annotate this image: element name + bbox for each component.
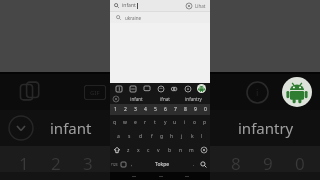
button[interactable]: ukraine <box>110 12 210 23</box>
button[interactable]: 3 <box>130 104 140 115</box>
staticText: Tokpe <box>155 161 170 168</box>
button[interactable]: v <box>153 143 164 157</box>
button[interactable]: , <box>128 157 135 172</box>
button[interactable]: u <box>170 115 180 129</box>
button[interactable]: Shift <box>110 143 123 157</box>
staticText: 9 <box>263 152 273 172</box>
button[interactable]: Stickers <box>114 84 124 94</box>
button[interactable]: m <box>186 143 197 157</box>
staticText: 1 <box>19 152 29 172</box>
staticText: infant <box>130 96 143 102</box>
button[interactable]: c <box>143 143 153 157</box>
button[interactable]: x <box>133 143 143 157</box>
staticText: d <box>139 133 143 140</box>
button[interactable]: l <box>197 129 207 143</box>
staticText: i <box>184 119 186 126</box>
button[interactable]: 6 <box>160 104 170 115</box>
button[interactable]: Lihat <box>195 3 206 9</box>
button[interactable]: b <box>164 143 175 157</box>
button[interactable]: t <box>150 115 160 129</box>
button[interactable]: h <box>167 129 177 143</box>
button[interactable]: infant <box>110 0 210 11</box>
staticText: 3 <box>83 152 93 172</box>
button[interactable]: p <box>200 115 210 129</box>
button[interactable]: GIF <box>78 75 112 109</box>
button[interactable]: k <box>187 129 197 143</box>
staticText: infantry <box>185 96 202 102</box>
button[interactable]: j <box>177 129 187 143</box>
button[interactable]: . <box>190 157 197 172</box>
button[interactable]: Expand suggestions <box>6 113 36 143</box>
button[interactable]: 7 <box>170 104 180 115</box>
staticText: ukraine <box>125 15 141 21</box>
staticText: n <box>179 147 183 154</box>
button[interactable]: 9 <box>252 152 284 172</box>
button[interactable]: g <box>157 129 167 143</box>
button[interactable]: q <box>110 115 120 129</box>
button[interactable]: 1 <box>110 104 120 115</box>
staticText: s <box>128 133 131 140</box>
button[interactable]: s <box>124 129 135 143</box>
staticText: w <box>123 119 127 126</box>
button[interactable]: Backspace <box>197 143 210 157</box>
staticText: f <box>151 133 153 140</box>
staticText: 2 <box>124 106 127 113</box>
button[interactable]: f <box>146 129 157 143</box>
button[interactable]: Navigation <box>131 174 136 179</box>
button[interactable]: Clear search <box>185 2 193 10</box>
button[interactable]: 0 <box>284 152 316 172</box>
button[interactable]: 0 <box>200 104 210 115</box>
staticText: 6 <box>164 106 167 113</box>
button[interactable]: o <box>190 115 200 129</box>
button[interactable]: 5 <box>150 104 160 115</box>
button[interactable]: z <box>123 143 133 157</box>
button[interactable]: 9 <box>190 104 200 115</box>
button[interactable]: Emoji <box>156 84 166 94</box>
button[interactable]: Avatar <box>282 77 312 107</box>
button[interactable]: infant <box>50 118 92 138</box>
staticText: y <box>164 119 167 126</box>
button[interactable]: a <box>113 129 124 143</box>
button[interactable]: 2 <box>40 152 72 172</box>
button[interactable]: Navigation <box>184 174 189 179</box>
button[interactable]: Navigation <box>158 174 163 179</box>
button[interactable]: i <box>180 115 190 129</box>
staticText: p <box>203 119 207 126</box>
button[interactable]: infant <box>122 94 150 104</box>
button[interactable]: infantry <box>179 94 208 104</box>
button[interactable]: 3 <box>72 152 104 172</box>
button[interactable]: 4 <box>140 104 150 115</box>
button[interactable]: Info <box>240 75 274 109</box>
button[interactable]: Tokpe <box>135 157 190 172</box>
button[interactable]: Translate <box>142 84 152 94</box>
staticText: j <box>181 133 183 140</box>
button[interactable]: Symbols <box>110 157 119 172</box>
staticText: u <box>173 119 177 126</box>
button[interactable]: r <box>140 115 150 129</box>
button[interactable]: Expand <box>110 94 122 104</box>
button[interactable]: Search <box>197 157 210 172</box>
button[interactable]: 1 <box>8 152 40 172</box>
staticText: m <box>189 147 194 154</box>
button[interactable]: Account <box>197 84 206 93</box>
button[interactable]: ifnat <box>150 94 179 104</box>
button[interactable]: 8 <box>180 104 190 115</box>
staticText: 2 <box>51 152 61 172</box>
button[interactable]: 8 <box>220 152 252 172</box>
button[interactable]: infantry <box>238 118 294 138</box>
button[interactable]: w <box>120 115 130 129</box>
staticText: i <box>256 86 259 98</box>
button[interactable]: d <box>135 129 146 143</box>
button[interactable]: 2 <box>120 104 130 115</box>
staticText: 0 <box>295 152 305 172</box>
button[interactable]: Settings <box>183 84 193 94</box>
staticText: z <box>127 147 130 154</box>
button[interactable]: Clipboard <box>128 84 138 94</box>
button[interactable]: Stickers <box>14 75 48 109</box>
button[interactable]: e <box>130 115 140 129</box>
button[interactable]: n <box>175 143 186 157</box>
button[interactable]: Emoji keyboard <box>119 157 128 172</box>
staticText: b <box>168 147 172 154</box>
button[interactable]: y <box>160 115 170 129</box>
button[interactable]: Themes <box>169 84 179 94</box>
